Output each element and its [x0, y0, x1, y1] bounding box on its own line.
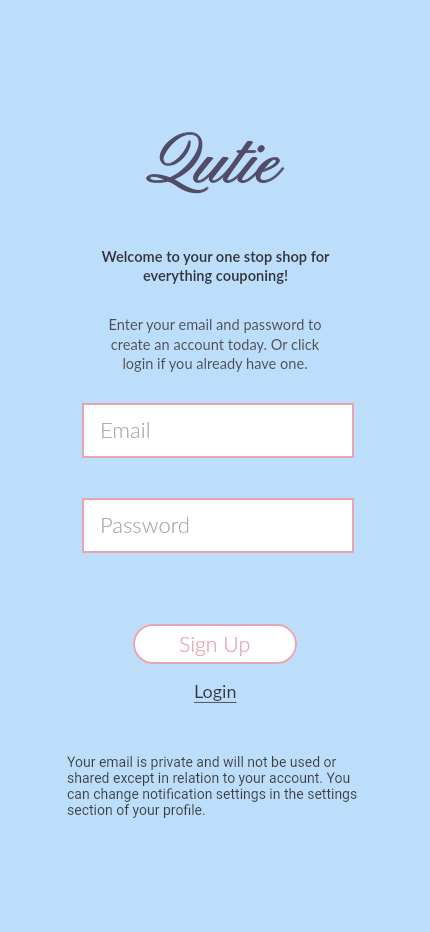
- staticText: Qutie: [148, 122, 281, 209]
- staticText: Sign Up: [179, 631, 251, 657]
- staticText: Qutie: [147, 122, 280, 209]
- staticText: Your email is private and will not be us…: [67, 754, 359, 818]
- button[interactable]: Sign Up: [133, 624, 297, 664]
- button[interactable]: Password: [82, 498, 354, 553]
- staticText: Enter your email and password to create …: [108, 316, 322, 372]
- staticText: Welcome to your one stop shop for everyt…: [101, 248, 330, 284]
- button[interactable]: Email: [82, 403, 354, 458]
- staticText: Login: [194, 680, 237, 702]
- staticText: Password: [100, 511, 190, 537]
- staticText: Qutie: [147, 123, 280, 210]
- staticText: Qutie: [147, 121, 280, 208]
- staticText: Qutie: [146, 122, 279, 209]
- button[interactable]: Login: [184, 676, 247, 706]
- staticText: Email: [100, 416, 151, 442]
